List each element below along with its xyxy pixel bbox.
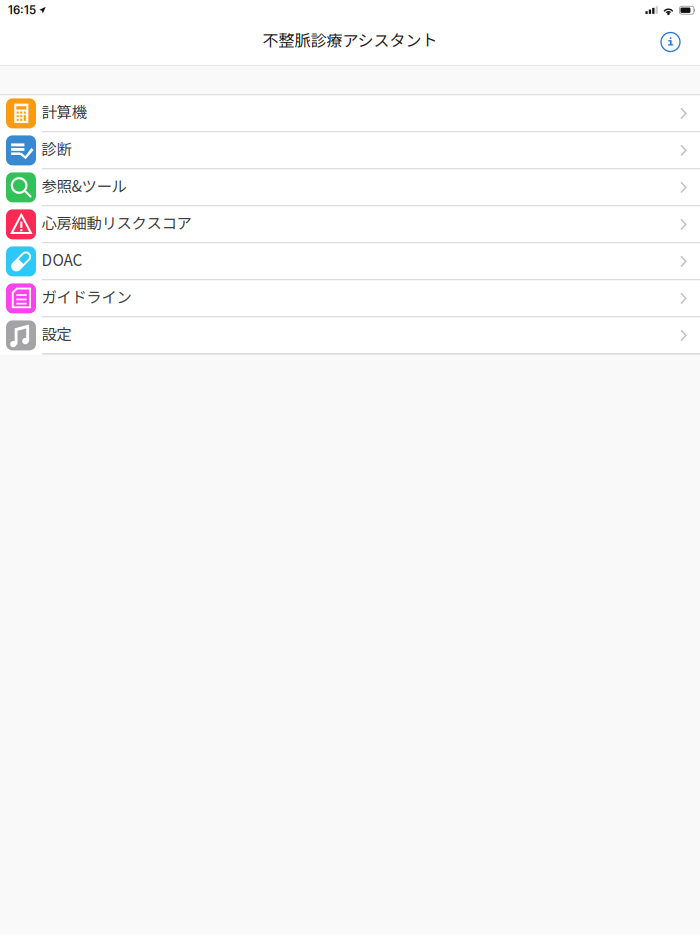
button[interactable]: 設定 — [0, 317, 700, 354]
button[interactable]: 計算機 — [0, 95, 700, 132]
staticText: 心房細動リスクスコア — [41, 211, 191, 233]
button[interactable]: 心房細動リスクスコア — [0, 206, 700, 243]
staticText: 計算機 — [41, 100, 86, 122]
button[interactable]: 参照&ツール — [0, 169, 700, 206]
button[interactable]: ガイドライン — [0, 280, 700, 317]
button[interactable]: 診断 — [0, 132, 700, 169]
staticText: 不整脈診療アシスタント — [262, 28, 437, 51]
staticText: 設定 — [41, 322, 71, 344]
staticText: 16:15 — [8, 3, 36, 17]
button[interactable]: DOAC — [0, 243, 700, 280]
staticText: ガイドライン — [41, 285, 131, 307]
button[interactable]: Info — [650, 23, 691, 60]
staticText: DOAC — [41, 248, 82, 270]
staticText: 診断 — [41, 137, 71, 159]
staticText: 参照&ツール — [41, 174, 126, 196]
